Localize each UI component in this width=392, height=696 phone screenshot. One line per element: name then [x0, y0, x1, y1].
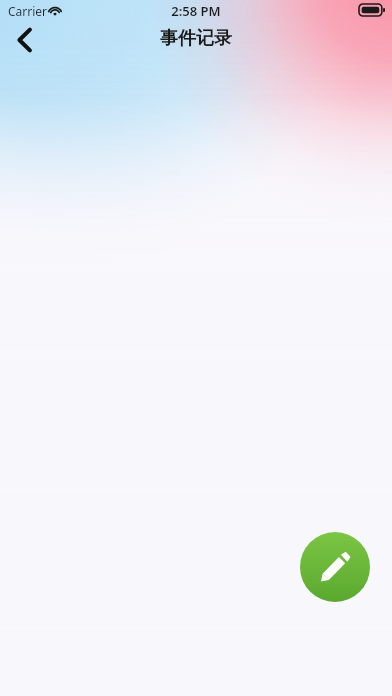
staticText: 2:58 PM: [171, 2, 221, 20]
button[interactable]: Back: [2, 22, 46, 58]
button[interactable]: New entry: [300, 532, 370, 602]
staticText: Carrier: [8, 3, 48, 19]
staticText: 事件记录: [160, 27, 232, 50]
